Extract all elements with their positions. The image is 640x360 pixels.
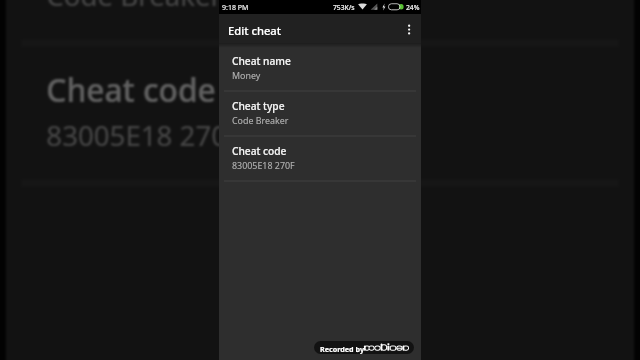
button[interactable]: Cheat code — [6, 46, 634, 186]
staticText: 83005E18 270F — [232, 159, 295, 171]
staticText: Money — [232, 69, 261, 81]
staticText: 83005E18 270F — [46, 115, 242, 152]
button[interactable]: Cheat type — [219, 92, 421, 137]
staticText: Recorded by — [320, 344, 365, 354]
staticText: Code Breaker — [46, 0, 224, 12]
staticText: 753K/s — [333, 3, 355, 12]
button[interactable]: Cheat code — [219, 137, 421, 182]
staticText: Cheat type — [232, 99, 285, 113]
button[interactable]: Cheat name — [219, 47, 421, 92]
staticText: 24% — [406, 3, 420, 12]
staticText: Cheat name — [232, 54, 291, 68]
staticText: Cheat code — [46, 68, 217, 111]
staticText: Edit cheat — [228, 23, 281, 38]
staticText: Code Breaker — [232, 114, 289, 126]
button[interactable]: Cheat type — [6, 0, 634, 46]
button[interactable]: More options — [397, 14, 421, 43]
staticText: 9:18 PM — [222, 3, 249, 13]
staticText: Cheat code — [232, 144, 287, 158]
